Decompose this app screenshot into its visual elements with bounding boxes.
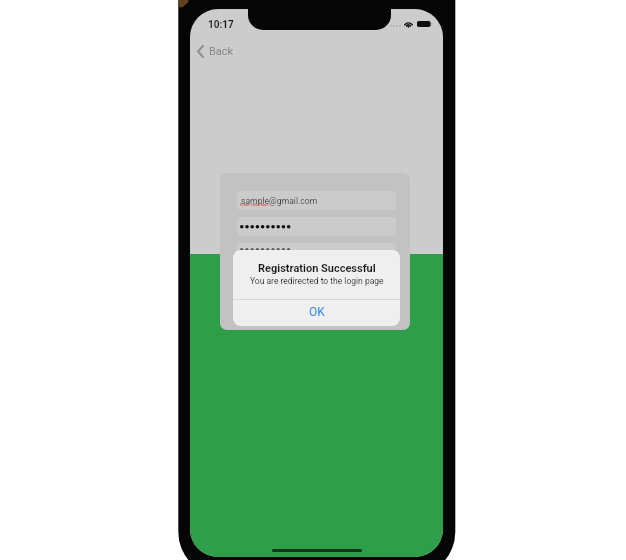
staticText: Registration Successful [258,262,376,275]
button[interactable]: Text field [237,191,396,210]
staticText: sample@gmail.com [241,196,318,206]
button[interactable]: Text field [237,217,396,236]
staticText: OK [309,305,325,319]
staticText: You are redirected to the login page [250,276,384,286]
button[interactable]: Back [194,42,237,61]
staticText: 10:17 [208,19,234,31]
staticText: Back [209,45,234,58]
staticText: Enter valid Mail [240,202,269,207]
button[interactable]: OK [233,298,400,325]
button[interactable]: Text field [237,243,396,262]
